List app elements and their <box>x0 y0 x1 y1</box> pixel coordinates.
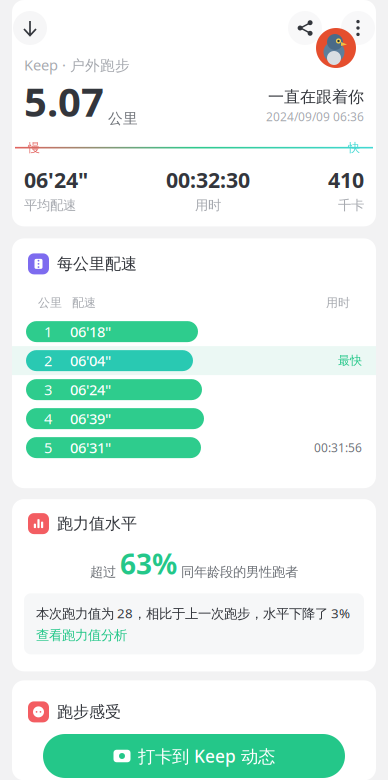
staticText: 00:32:30 <box>166 166 250 194</box>
button[interactable]: Download <box>13 11 47 45</box>
staticText: 快 <box>348 140 360 155</box>
staticText: 3 <box>44 380 52 399</box>
staticText: 1 <box>44 322 52 341</box>
staticText: 本次跑力值为 28，相比于上一次跑步，水平下降了 3% <box>36 604 350 622</box>
staticText: 公里 <box>104 110 138 128</box>
staticText: 跑力值水平 <box>57 514 137 533</box>
staticText: 配速 <box>72 295 96 310</box>
staticText: 63% <box>120 545 177 582</box>
staticText: 用时 <box>326 295 350 310</box>
button[interactable]: 打卡到 Keep 动态 <box>43 734 345 778</box>
staticText: 慢 <box>28 140 40 155</box>
staticText: 每公里配速 <box>57 254 137 274</box>
staticText: 跑步感受 <box>57 702 121 722</box>
staticText: 06'31" <box>70 438 111 457</box>
button[interactable]: Share <box>288 11 322 45</box>
staticText: 2024/09/09 06:36 <box>266 109 364 125</box>
staticText: 5.07 <box>24 75 104 128</box>
staticText: 06'18" <box>70 322 111 341</box>
staticText: 公里 <box>38 295 62 310</box>
button[interactable]: 查看跑力值分析 <box>36 627 127 643</box>
staticText: 平均配速 <box>24 197 76 213</box>
staticText: Keep · 户外跑步 <box>24 55 130 75</box>
staticText: 打卡到 Keep 动态 <box>138 744 275 767</box>
staticText: 最快 <box>338 353 362 368</box>
staticText: 超过 <box>90 564 120 580</box>
staticText: 06'04" <box>70 351 111 370</box>
staticText: 410 <box>328 166 364 194</box>
staticText: 06'24" <box>24 166 88 194</box>
staticText: 06'39" <box>70 409 111 428</box>
staticText: 用时 <box>195 197 221 213</box>
staticText: 4 <box>44 409 52 428</box>
staticText: 查看跑力值分析 <box>36 627 127 643</box>
staticText: 00:31:56 <box>314 440 362 455</box>
staticText: 同年龄段的男性跑者 <box>177 564 298 580</box>
button[interactable]: More <box>341 11 375 45</box>
staticText: 一直在跟着你 <box>268 87 364 107</box>
staticText: 06'24" <box>70 380 111 399</box>
staticText: 2 <box>44 351 52 370</box>
staticText: 5 <box>44 438 52 457</box>
staticText: 千卡 <box>338 197 364 213</box>
